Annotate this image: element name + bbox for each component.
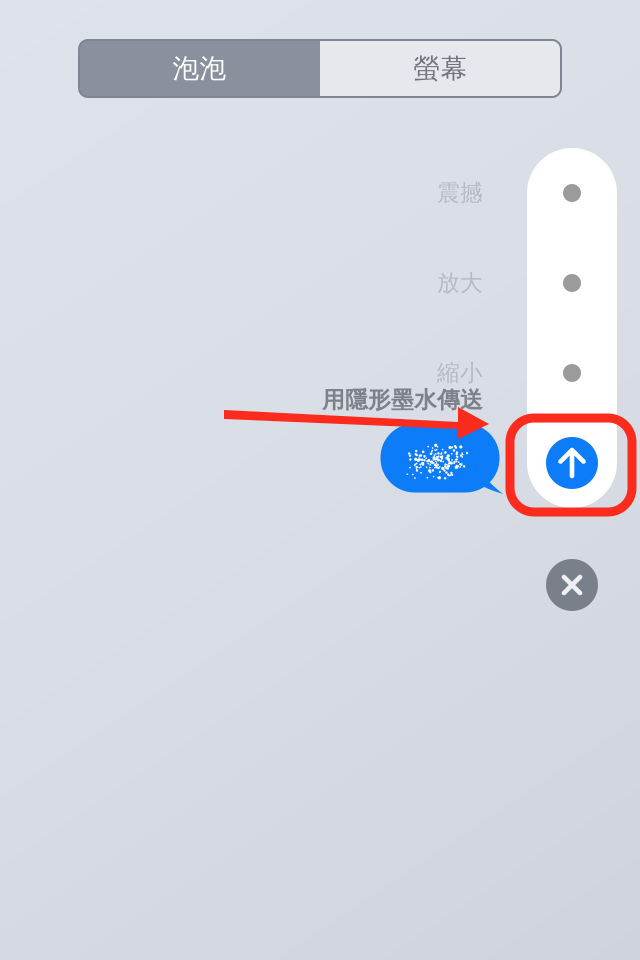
- button[interactable]: Effect option: [527, 238, 617, 328]
- button[interactable]: 用隱形墨水傳送: [153, 380, 483, 420]
- button[interactable]: 震撼: [153, 173, 483, 213]
- staticText: 用隱形墨水傳送: [322, 386, 483, 414]
- staticText: 螢幕: [413, 52, 467, 85]
- button[interactable]: 放大: [153, 263, 483, 303]
- button[interactable]: 螢幕: [320, 40, 561, 97]
- staticText: 縮小: [437, 359, 483, 387]
- staticText: 放大: [437, 269, 483, 297]
- button[interactable]: 縮小: [153, 353, 483, 393]
- button[interactable]: Close: [546, 559, 598, 611]
- button[interactable]: 泡泡: [79, 40, 320, 97]
- staticText: 震撼: [437, 179, 483, 207]
- button[interactable]: Effect option: [527, 328, 617, 418]
- staticText: 泡泡: [172, 52, 226, 85]
- button[interactable]: Send with invisible ink: [527, 418, 617, 508]
- button[interactable]: Effect option: [527, 148, 617, 238]
